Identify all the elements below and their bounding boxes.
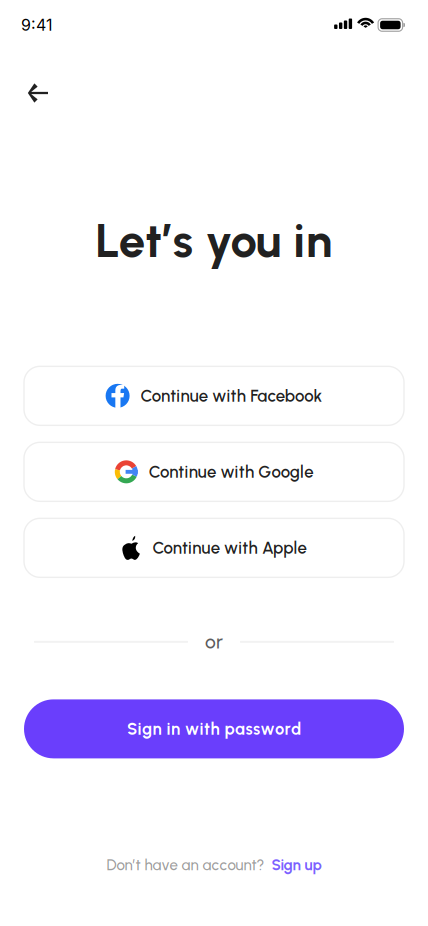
staticText: Sign in with password (127, 719, 301, 739)
staticText: 9:41 (21, 15, 53, 35)
button[interactable]: Sign in with password (24, 699, 404, 758)
staticText: Continue with Apple (152, 538, 307, 558)
button[interactable]: Continue with Facebook (24, 366, 404, 425)
staticText: Don’t have an account? (106, 856, 264, 874)
staticText: or (205, 630, 223, 653)
staticText: Continue with Facebook (141, 386, 322, 406)
staticText: Continue with Google (149, 462, 313, 482)
button[interactable]: Back (16, 71, 60, 115)
staticText: Sign up (271, 856, 321, 874)
button[interactable]: Continue with Apple (24, 518, 404, 577)
button[interactable]: Sign up (271, 856, 321, 874)
staticText: Let’s you in (95, 212, 333, 269)
button[interactable]: Continue with Google (24, 442, 404, 501)
